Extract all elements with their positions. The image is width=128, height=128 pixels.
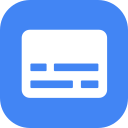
button[interactable]: Card details [22,30,107,98]
